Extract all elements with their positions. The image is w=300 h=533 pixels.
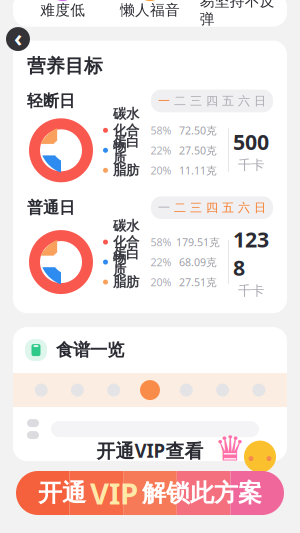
staticText: 开通 [38,478,86,508]
staticText: 蛋白质 [113,246,139,278]
staticText: 二 [174,200,186,215]
staticText: 一 [158,94,170,108]
staticText: 蛋白质 [113,134,139,167]
staticText: 脂肪 [113,274,139,290]
staticText: 22% [150,255,171,269]
staticText: 解锁此方案 [142,478,262,508]
staticText: VIP [90,473,138,512]
staticText: 11.11克 [179,163,217,177]
staticText: 食谱一览 [56,339,124,361]
staticText: 千卡 [238,157,264,173]
staticText: 一 [158,200,170,215]
staticText: 1238 [233,225,269,282]
staticText: 500 [233,127,269,156]
staticText: 二 [174,94,186,108]
staticText: 179.51克 [176,235,220,249]
staticText: 五 [222,200,234,215]
staticText: 难度低 [40,1,85,19]
staticText: ♛ [214,429,245,468]
staticText: 营养目标 [27,55,103,77]
staticText: 碳水化合物 [113,217,139,267]
staticText: 懒人福音 [120,1,180,19]
staticText: 58% [150,235,171,249]
button[interactable]: 一 [151,196,273,219]
staticText: 日 [254,94,266,108]
staticText: 千卡 [238,283,264,299]
staticText: 20% [150,163,171,177]
staticText: 72.50克 [179,123,217,137]
staticText: 20% [150,275,171,289]
staticText: 脂肪 [113,162,139,178]
staticText: 四 [206,200,218,215]
staticText: 轻断日 [27,91,75,111]
button[interactable]: 返回 [6,24,30,54]
staticText: 开通VIP查看 [96,438,203,463]
staticText: 六 [238,94,250,108]
staticText: 日 [254,200,266,215]
staticText: 三 [190,94,202,108]
button[interactable]: 一 [151,90,273,112]
staticText: 68.09克 [179,255,217,269]
staticText: 四 [206,94,218,108]
staticText: 58% [150,123,171,137]
staticText: 普通日 [27,198,75,218]
staticText: 27.50克 [179,143,217,157]
staticText: 碳水化合物 [113,106,139,155]
staticText: 三 [190,200,202,215]
staticText: 27.51克 [179,275,217,289]
staticText: 五 [222,94,234,108]
staticText: 六 [238,200,250,215]
staticText: 22% [150,143,171,157]
staticText: 易坚持不反弹 [200,0,275,28]
staticText: ‹ [14,23,22,53]
button[interactable]: 开通 [0,471,300,515]
